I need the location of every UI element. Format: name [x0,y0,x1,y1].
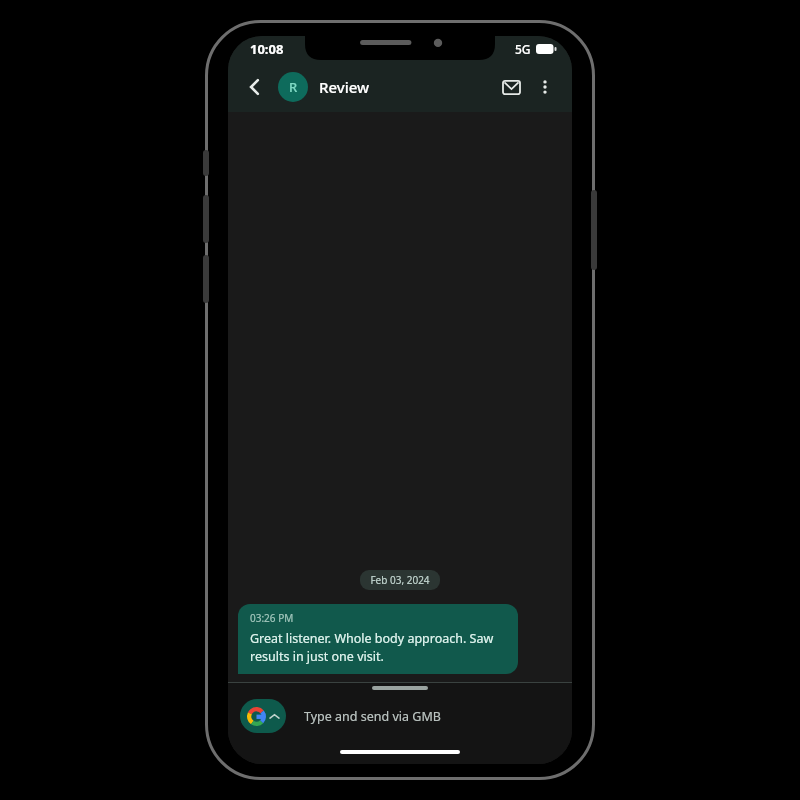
button[interactable]: Choose sending channel [240,699,286,733]
staticText: Feb 03, 2024 [370,573,430,587]
button[interactable]: Type and send via GMB [304,708,572,725]
staticText: 5G [515,41,531,57]
staticText: Review [319,77,494,97]
button[interactable]: 03:26 PM [238,604,518,674]
staticText: 03:26 PM [250,611,294,625]
staticText: Great listener. Whole body approach. Saw… [250,630,506,665]
button[interactable]: R [278,72,308,102]
staticText: R [289,78,298,96]
button[interactable]: Mail [494,70,528,104]
staticText: 10:08 [250,40,284,58]
button[interactable]: Back [238,70,272,104]
button[interactable]: More options [528,70,562,104]
